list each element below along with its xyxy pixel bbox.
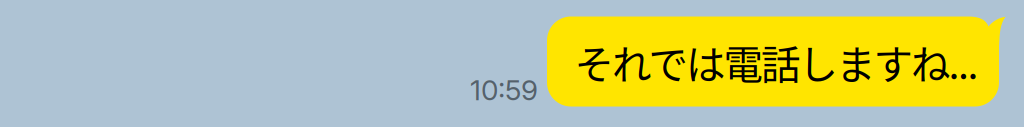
button[interactable]: それでは電話しますね... bbox=[0, 0, 1024, 127]
staticText: 10:59 bbox=[470, 73, 538, 107]
staticText: それでは電話しますね... bbox=[574, 33, 978, 90]
